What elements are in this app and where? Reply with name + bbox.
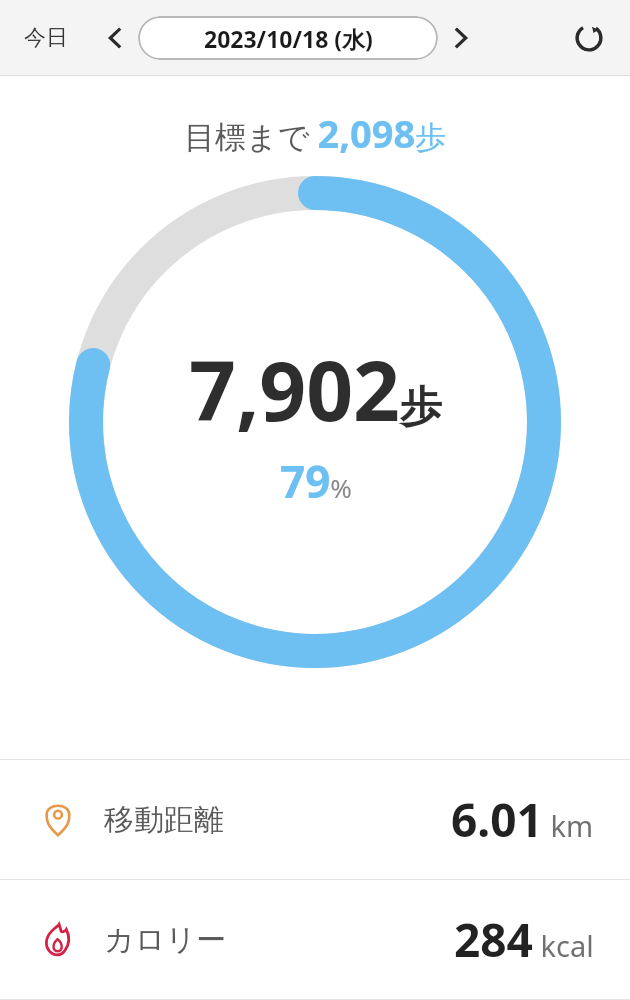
button[interactable]: 移動距離 <box>0 760 630 879</box>
staticText: カロリー <box>104 921 227 959</box>
staticText: 移動距離 <box>104 801 224 839</box>
button[interactable]: 2023/10/18 (水) <box>138 16 438 60</box>
button[interactable]: 前の日 <box>92 15 138 61</box>
staticText: 7,902歩 <box>189 333 442 445</box>
button[interactable]: 今日 <box>14 18 78 58</box>
staticText: 6.01 km <box>451 788 594 851</box>
staticText: 79% <box>280 451 352 511</box>
button[interactable]: 更新 <box>564 13 614 63</box>
staticText: 284 kcal <box>454 908 594 971</box>
staticText: 今日 <box>24 24 68 52</box>
staticText: 2023/10/18 (水) <box>204 23 373 54</box>
button[interactable]: カロリー <box>0 880 630 999</box>
staticText: 目標まで 2,098歩 <box>184 107 447 159</box>
button[interactable]: 次の日 <box>438 15 484 61</box>
